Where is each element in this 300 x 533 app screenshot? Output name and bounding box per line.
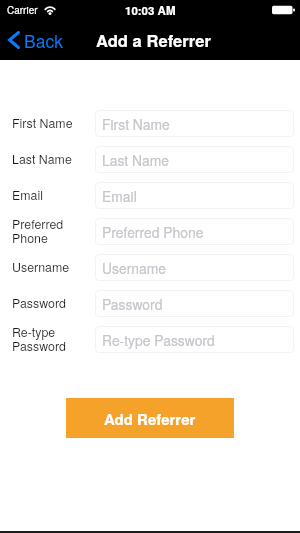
- staticText: Back: [24, 28, 63, 53]
- staticText: Re-type Password: [12, 323, 66, 355]
- staticText: Password: [12, 294, 66, 312]
- staticText: First Name: [102, 114, 170, 134]
- staticText: Username: [12, 258, 70, 276]
- staticText: Last Name: [12, 150, 72, 168]
- staticText: Carrier: [7, 3, 38, 17]
- button[interactable]: Add Referrer: [66, 398, 234, 438]
- staticText: Re-type Password: [102, 330, 215, 350]
- button[interactable]: Email: [95, 182, 294, 209]
- staticText: Add a Referrer: [96, 28, 212, 52]
- staticText: Last Name: [102, 150, 170, 170]
- staticText: Preferred Phone: [102, 222, 204, 242]
- staticText: Username: [102, 258, 167, 278]
- staticText: Add Referrer: [104, 408, 196, 429]
- button[interactable]: Username: [95, 254, 294, 281]
- button[interactable]: Password: [95, 290, 294, 317]
- staticText: 10:03 AM: [125, 2, 176, 18]
- staticText: Password: [102, 294, 163, 314]
- staticText: Email: [102, 186, 137, 206]
- staticText: Email: [12, 186, 43, 204]
- button[interactable]: First Name: [95, 110, 294, 137]
- button[interactable]: Re-type Password: [95, 326, 294, 353]
- button[interactable]: Back: [0, 20, 71, 60]
- button[interactable]: Last Name: [95, 146, 294, 173]
- staticText: Preferred Phone: [12, 215, 64, 247]
- button[interactable]: Preferred Phone: [95, 218, 294, 245]
- staticText: First Name: [12, 114, 73, 132]
